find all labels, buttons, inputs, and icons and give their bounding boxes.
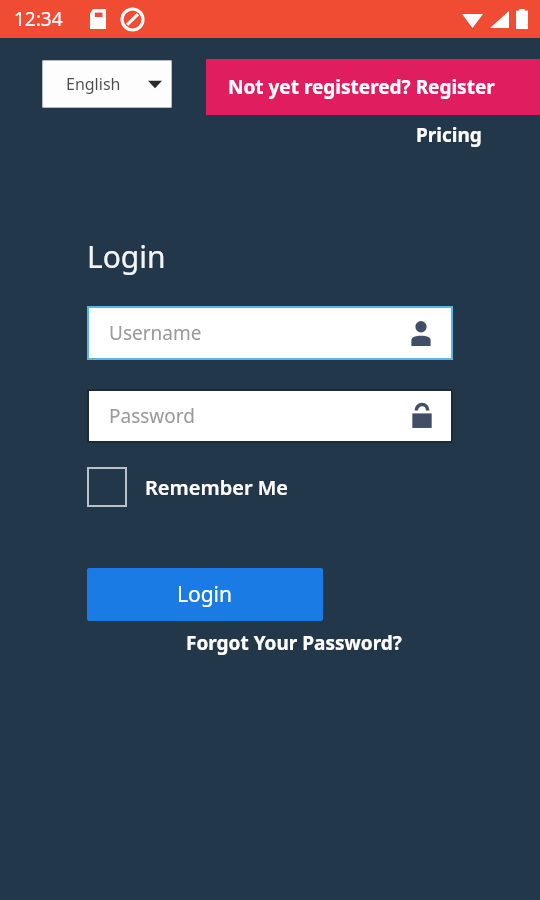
button[interactable]: Username bbox=[87, 306, 453, 360]
staticText: Login bbox=[87, 236, 166, 277]
button[interactable]: Remember Me bbox=[87, 466, 289, 508]
button[interactable]: Forgot Your Password? bbox=[186, 627, 402, 659]
button[interactable]: English bbox=[42, 60, 172, 108]
staticText: Password bbox=[109, 403, 195, 429]
button[interactable]: Pricing bbox=[416, 120, 482, 150]
staticText: Not yet registered? Register bbox=[228, 74, 495, 100]
staticText: 12:34 bbox=[14, 6, 63, 32]
staticText: Username bbox=[109, 320, 202, 346]
staticText: English bbox=[66, 73, 121, 95]
button[interactable]: Not yet registered? Register bbox=[206, 59, 540, 115]
staticText: Forgot Your Password? bbox=[186, 630, 402, 656]
button[interactable]: Login bbox=[87, 568, 323, 621]
button[interactable]: Password bbox=[87, 389, 453, 443]
staticText: Login bbox=[177, 580, 233, 609]
staticText: Pricing bbox=[416, 122, 482, 148]
staticText: Remember Me bbox=[145, 474, 289, 501]
